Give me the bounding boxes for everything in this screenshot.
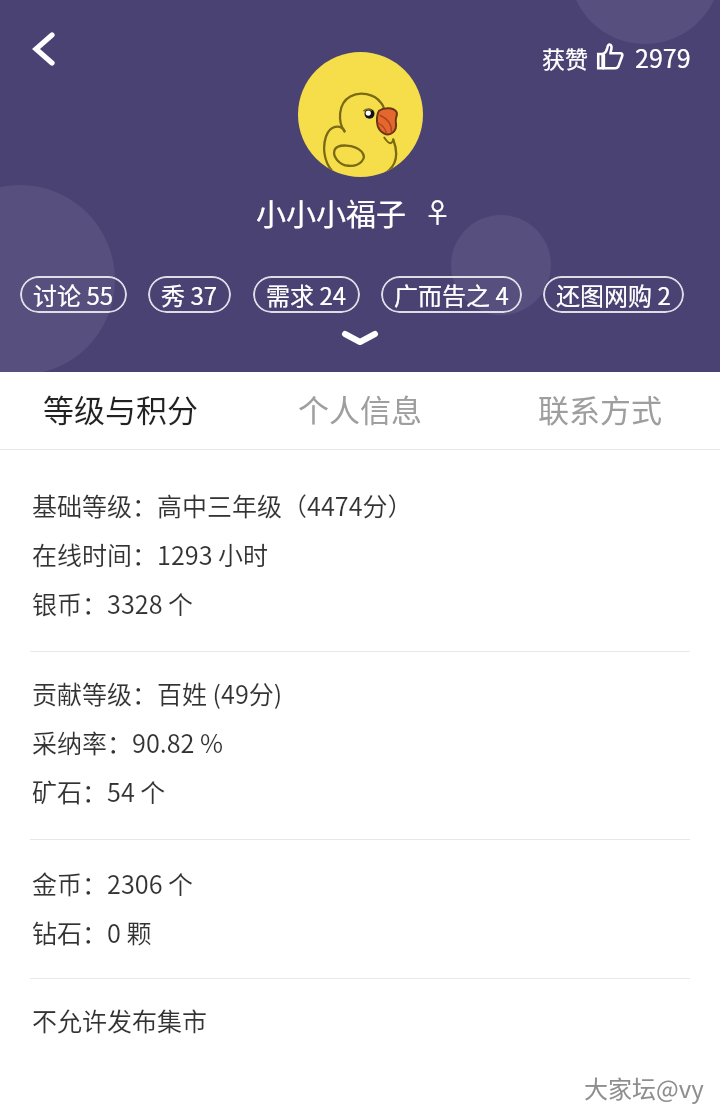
staticText: 不允许发布集市	[32, 1002, 208, 1038]
button[interactable]: Avatar	[298, 52, 423, 177]
button[interactable]: Expand	[336, 322, 384, 354]
button[interactable]: 秀 37	[148, 276, 231, 313]
staticText: 贡献等级：百姓 (49分)	[32, 675, 283, 711]
button[interactable]: 广而告之 4	[381, 276, 522, 313]
staticText: 个人信息	[298, 386, 422, 431]
staticText: 大家坛@vy	[584, 1070, 704, 1105]
button[interactable]: 获赞 2979	[542, 39, 691, 75]
button[interactable]: 还图网购 2	[543, 276, 684, 313]
staticText: 小小小福子	[256, 190, 406, 233]
button[interactable]: Back	[15, 20, 73, 78]
staticText: 还图网购 2	[556, 277, 671, 312]
staticText: 讨论 55	[33, 277, 114, 312]
button[interactable]: 联系方式	[480, 372, 720, 449]
staticText: 矿石：54 个	[32, 773, 166, 809]
staticText: 广而告之 4	[394, 277, 509, 312]
staticText: 2979	[635, 39, 691, 75]
staticText: 银币：3328 个	[32, 585, 194, 621]
staticText: 基础等级：高中三年级（4474分）	[32, 487, 413, 523]
staticText: ♀	[424, 192, 451, 231]
button[interactable]: 讨论 55	[20, 276, 127, 313]
staticText: 在线时间：1293 小时	[32, 536, 269, 572]
button[interactable]: 需求 24	[253, 276, 360, 313]
staticText: 联系方式	[538, 386, 662, 431]
staticText: 金币：2306 个	[32, 865, 194, 901]
staticText: 等级与积分	[43, 386, 198, 431]
staticText: 需求 24	[266, 277, 347, 312]
staticText: 采纳率：90.82 %	[32, 724, 224, 760]
staticText: 获赞	[542, 41, 588, 74]
staticText: 钻石：0 颗	[32, 914, 152, 950]
button[interactable]: 个人信息	[240, 372, 480, 449]
button[interactable]: 等级与积分	[0, 372, 240, 449]
staticText: 秀 37	[161, 277, 218, 312]
